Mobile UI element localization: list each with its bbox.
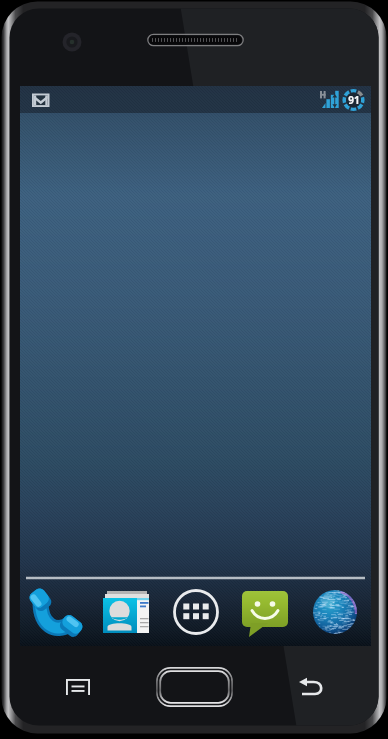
button[interactable]: Browser <box>307 584 363 640</box>
staticText: 91 <box>348 93 360 107</box>
button[interactable]: Back <box>290 666 334 706</box>
button[interactable]: Menu <box>56 666 100 706</box>
button[interactable]: Phone <box>28 584 84 640</box>
button[interactable]: Messaging <box>238 584 294 640</box>
button[interactable]: Apps <box>168 584 224 640</box>
button[interactable]: Contacts <box>98 584 154 640</box>
button[interactable]: Home <box>158 664 234 708</box>
